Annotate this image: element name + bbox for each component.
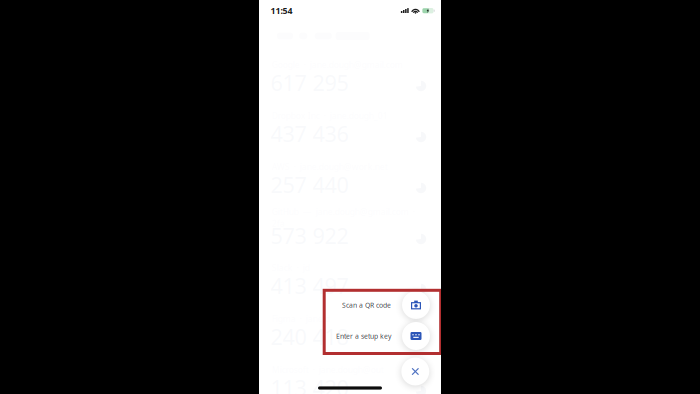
staticText: 11:54 — [270, 5, 292, 17]
staticText: Enter a setup key — [336, 331, 391, 341]
button[interactable]: Scan a QR code — [259, 289, 441, 320]
staticText: 113 420 — [270, 373, 348, 394]
button[interactable]: Close menu — [399, 355, 431, 387]
staticText: 240 418 — [270, 322, 348, 351]
staticText: Figma · jane.d — [272, 313, 330, 324]
staticText: Scan a QR code — [342, 300, 391, 310]
button[interactable]: Enter a setup key — [259, 320, 441, 351]
staticText: 413 497 — [270, 271, 348, 300]
